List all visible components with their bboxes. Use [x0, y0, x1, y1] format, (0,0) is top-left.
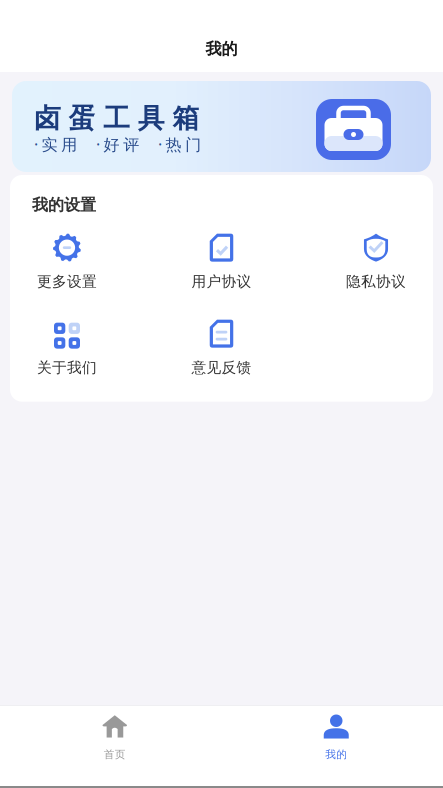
- button[interactable]: 意见反馈: [175, 319, 267, 377]
- staticText: 更多设置: [37, 273, 97, 291]
- button[interactable]: 用户协议: [175, 233, 267, 291]
- staticText: 隐私协议: [346, 273, 406, 291]
- staticText: 我的: [205, 39, 237, 59]
- staticText: 意见反馈: [191, 359, 251, 377]
- button[interactable]: 我的: [225, 706, 443, 786]
- staticText: 卤蛋工具箱: [34, 102, 199, 135]
- staticText: 我的设置: [32, 195, 96, 215]
- button[interactable]: 隐私协议: [330, 233, 422, 291]
- staticText: 关于我们: [37, 359, 97, 377]
- button[interactable]: 更多设置: [21, 233, 113, 291]
- button[interactable]: 首页: [4, 706, 225, 786]
- button[interactable]: 关于我们: [21, 319, 113, 377]
- staticText: 我的: [325, 748, 347, 761]
- staticText: ·实用 ·好评 ·热门: [34, 134, 201, 155]
- staticText: 首页: [104, 748, 126, 761]
- staticText: 用户协议: [191, 273, 251, 291]
